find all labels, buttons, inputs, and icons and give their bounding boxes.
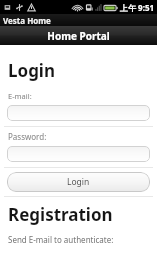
staticText: Home Portal — [47, 29, 110, 43]
staticText: Vesta Home — [3, 15, 51, 26]
button[interactable] — [7, 105, 150, 121]
staticText: Login — [67, 176, 90, 188]
staticText: Password: — [8, 131, 47, 142]
staticText: Login — [8, 59, 56, 82]
staticText: 上午 9:51 — [120, 2, 155, 13]
button[interactable] — [7, 146, 150, 162]
staticText: E-mail: — [8, 91, 32, 101]
staticText: Send E-mail to authenticate: — [8, 234, 114, 245]
staticText: Registration — [8, 203, 113, 226]
button[interactable]: Login — [7, 172, 150, 192]
